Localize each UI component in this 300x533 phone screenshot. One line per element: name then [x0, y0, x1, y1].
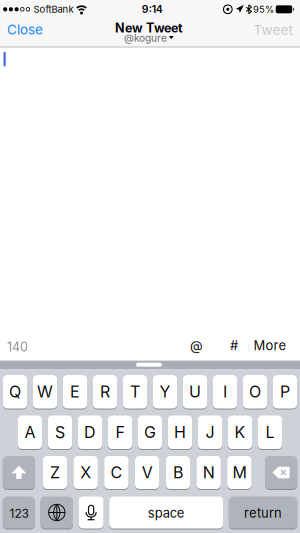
staticText: @kogure	[124, 32, 167, 44]
button[interactable]: Shift	[3, 456, 35, 489]
button[interactable]: J	[198, 415, 222, 449]
staticText: #	[230, 338, 238, 353]
staticText: Tweet	[253, 22, 292, 38]
staticText: 123	[9, 506, 28, 521]
staticText: New Tweet	[115, 20, 183, 35]
button[interactable]: M	[227, 456, 252, 489]
button[interactable]: B	[166, 456, 190, 489]
button[interactable]: E	[63, 375, 87, 408]
staticText: C	[110, 463, 122, 482]
staticText: N	[203, 463, 215, 482]
button[interactable]: Delete	[265, 456, 297, 489]
staticText: Q	[9, 382, 21, 401]
staticText: O	[249, 382, 261, 401]
staticText: 140	[7, 339, 28, 354]
staticText: T	[130, 382, 140, 401]
staticText: W	[37, 382, 53, 401]
button[interactable]: X	[73, 456, 98, 489]
staticText: U	[189, 382, 201, 401]
staticText: @	[190, 338, 203, 353]
button[interactable]: N	[196, 456, 221, 489]
button[interactable]: return	[229, 496, 297, 528]
staticText: K	[234, 423, 245, 442]
staticText: Z	[50, 463, 60, 482]
button[interactable]: D	[78, 415, 102, 449]
staticText: D	[84, 423, 96, 442]
button[interactable]: F	[108, 415, 132, 449]
button[interactable]: L	[258, 415, 282, 449]
button[interactable]: R	[93, 375, 117, 408]
staticText: R	[100, 382, 110, 401]
staticText: J	[205, 423, 214, 442]
staticText: X	[80, 463, 91, 482]
staticText: P	[280, 382, 290, 401]
staticText: 95%	[253, 4, 274, 15]
button[interactable]: Z	[43, 456, 67, 489]
button[interactable]: Q	[3, 375, 27, 408]
button[interactable]: H	[168, 415, 192, 449]
staticText: S	[55, 423, 65, 442]
button[interactable]: V	[135, 456, 159, 489]
button[interactable]: Tweet	[245, 17, 300, 43]
button[interactable]: Close	[0, 17, 53, 43]
button[interactable]: 123	[3, 496, 35, 528]
staticText: H	[174, 423, 186, 442]
staticText: V	[142, 463, 153, 482]
staticText: 9:14	[142, 3, 163, 16]
button[interactable]: P	[273, 375, 297, 408]
staticText: SoftBank	[33, 4, 73, 15]
button[interactable]: I	[213, 375, 237, 408]
button[interactable]: A	[18, 415, 42, 449]
button[interactable]: Dictate	[79, 496, 104, 528]
staticText: I	[223, 382, 227, 401]
button[interactable]: G	[138, 415, 162, 449]
button[interactable]: Y	[153, 375, 177, 408]
staticText: return	[244, 505, 282, 521]
staticText: space	[148, 505, 185, 521]
staticText: A	[24, 423, 35, 442]
staticText: F	[115, 423, 124, 442]
staticText: G	[144, 423, 156, 442]
staticText: E	[70, 382, 80, 401]
button[interactable]: C	[104, 456, 129, 489]
button[interactable]: @	[183, 334, 209, 356]
staticText: B	[173, 463, 183, 482]
button[interactable]: O	[243, 375, 267, 408]
staticText: M	[232, 463, 246, 482]
button[interactable]: S	[48, 415, 72, 449]
staticText: More	[253, 338, 286, 353]
staticText: L	[265, 423, 274, 442]
button[interactable]: Next keyboard	[41, 496, 73, 528]
button[interactable]: More	[246, 334, 294, 356]
button[interactable]: U	[183, 375, 207, 408]
button[interactable]: K	[228, 415, 252, 449]
button[interactable]: @kogure	[124, 32, 174, 44]
button[interactable]: T	[123, 375, 147, 408]
button[interactable]: W	[33, 375, 57, 408]
staticText: Close	[7, 21, 43, 38]
button[interactable]: #	[221, 334, 247, 356]
staticText: Y	[159, 382, 170, 401]
button[interactable]: space	[109, 496, 223, 528]
